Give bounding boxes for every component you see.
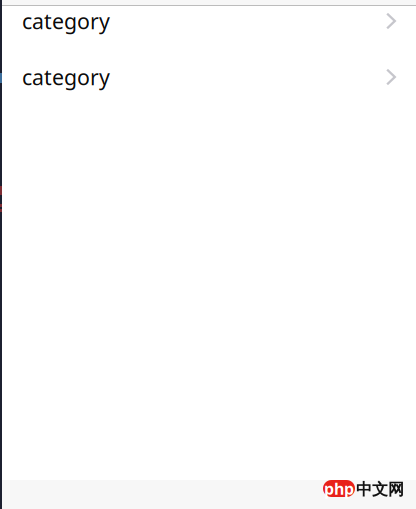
staticText: 中文网 <box>356 480 404 499</box>
button[interactable]: category <box>0 49 416 105</box>
staticText: category <box>22 7 110 35</box>
staticText: category <box>22 63 110 91</box>
staticText: php <box>324 478 354 499</box>
button[interactable]: category <box>0 0 416 49</box>
